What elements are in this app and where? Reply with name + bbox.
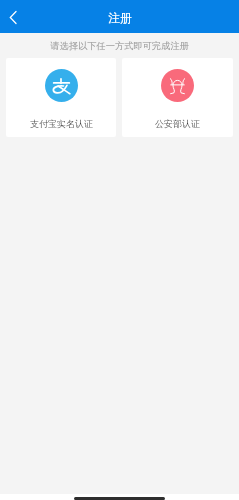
button[interactable]: 支付宝实名认证 xyxy=(6,58,116,137)
button[interactable]: 公安部认证 xyxy=(122,58,233,137)
staticText: 请选择以下任一方式即可完成注册 xyxy=(50,40,189,52)
staticText: 支付宝实名认证 xyxy=(30,118,93,129)
button[interactable]: Back xyxy=(0,4,26,30)
staticText: 注册 xyxy=(108,11,132,26)
staticText: 公安部认证 xyxy=(155,118,200,129)
